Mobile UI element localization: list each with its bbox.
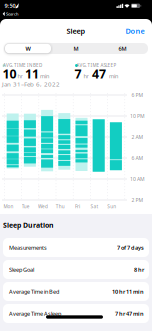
button[interactable]: Back to Search [0,0,17,5]
staticText: Sleep Duration [3,220,54,230]
staticText: Thu [56,203,65,210]
staticText: Wed [38,203,48,210]
staticText: 6 PM [131,91,143,98]
staticText: 10 AM [130,175,145,182]
button[interactable]: Sleep Goal [3,260,149,279]
staticText: 7 of 7 days [117,244,144,251]
staticText: AVG. TIME ASLEEP [76,62,116,68]
button[interactable]: M [52,43,100,54]
staticText: 7 [74,65,81,82]
staticText: W [25,45,30,52]
button[interactable]: W [5,44,51,53]
staticText: Average Time in Bed [9,288,59,295]
staticText: 47 [92,65,106,82]
staticText: 10 hr 11 min [112,288,144,295]
staticText: Sat [91,203,99,210]
staticText: Sleep [66,26,85,36]
button[interactable]: Average Time in Bed [3,282,149,301]
staticText: 10 [2,65,16,82]
button[interactable]: Done [125,26,144,36]
staticText: 2 PM [131,196,143,203]
staticText: 6 AM [131,154,143,161]
staticText: AVG. TIME IN BED [3,62,42,68]
staticText: 8 hr [134,266,144,273]
staticText: Mon [4,203,14,210]
staticText: Jan 31–Feb 6, 2022 [2,80,60,88]
button[interactable]: 6M [98,43,146,54]
staticText: Sleep Goal [9,266,34,273]
staticText: Average Time Asleep [9,310,61,317]
staticText: Done [125,26,144,36]
staticText: Search [6,11,19,16]
staticText: Measurements [9,244,47,251]
staticText: 11 [25,65,39,82]
button[interactable]: Average Time Asleep [3,304,149,323]
staticText: Fri [75,203,80,210]
staticText: 7 hr 47 min [115,310,144,317]
staticText: hr [83,72,88,80]
staticText: 6M [118,45,126,52]
staticText: 10 PM [130,112,145,119]
staticText: Tue [22,203,30,210]
staticText: hr [17,72,22,80]
staticText: Sun [107,203,116,210]
button[interactable]: Measurements [3,238,149,257]
staticText: min [109,72,118,80]
staticText: min [40,72,49,80]
staticText: 9:50 [4,2,15,9]
staticText: 2 AM [131,133,143,140]
staticText: M [73,45,78,52]
